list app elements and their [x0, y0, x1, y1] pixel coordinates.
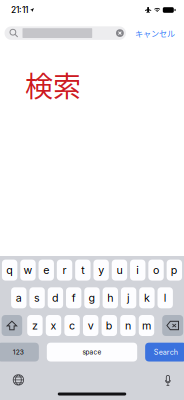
button[interactable]: t: [75, 260, 90, 281]
staticText: b: [106, 319, 113, 332]
button[interactable]: r: [57, 260, 72, 281]
button[interactable]: Delete: [162, 315, 183, 336]
button[interactable]: m: [139, 315, 154, 336]
button[interactable]: キャンセル: [134, 26, 176, 40]
button[interactable]: 123: [0, 343, 39, 361]
button[interactable]: space: [47, 343, 137, 361]
button[interactable]: a: [11, 287, 26, 308]
button[interactable]: l: [157, 287, 173, 308]
staticText: a: [16, 291, 22, 304]
button[interactable]: s: [29, 287, 45, 308]
staticText: v: [88, 319, 94, 332]
staticText: w: [23, 264, 32, 276]
staticText: キャンセル: [135, 27, 175, 39]
button[interactable]: y: [93, 260, 109, 281]
staticText: j: [127, 291, 130, 304]
button[interactable]: g: [84, 287, 100, 308]
staticText: q: [6, 264, 13, 276]
button[interactable]: x: [46, 315, 61, 336]
button[interactable]: w: [20, 260, 36, 281]
button[interactable]: p: [167, 260, 182, 281]
staticText: f: [72, 291, 76, 304]
button[interactable]: e: [38, 260, 54, 281]
staticText: h: [107, 291, 113, 304]
staticText: c: [69, 319, 75, 332]
staticText: y: [98, 264, 104, 276]
staticText: 123: [13, 348, 24, 356]
button[interactable]: o: [148, 260, 164, 281]
staticText: i: [136, 264, 139, 276]
staticText: d: [52, 291, 59, 304]
staticText: 21:11: [11, 5, 28, 15]
staticText: x: [50, 319, 56, 332]
button[interactable]: b: [102, 315, 117, 336]
staticText: s: [34, 291, 40, 304]
staticText: p: [171, 264, 178, 276]
staticText: 検索: [25, 64, 81, 105]
button[interactable]: z: [27, 315, 43, 336]
staticText: n: [125, 319, 131, 332]
staticText: t: [81, 264, 84, 276]
staticText: Search: [154, 348, 178, 356]
button[interactable]: d: [48, 287, 63, 308]
button[interactable]: c: [64, 315, 80, 336]
button[interactable]: u: [112, 260, 127, 281]
button[interactable]: f: [66, 287, 81, 308]
button[interactable]: q: [2, 260, 17, 281]
staticText: space: [82, 348, 101, 356]
staticText: e: [43, 264, 49, 276]
button[interactable]: n: [120, 315, 136, 336]
staticText: r: [62, 264, 66, 276]
staticText: u: [116, 264, 122, 276]
button[interactable]: Change keyboard: [13, 374, 24, 386]
staticText: k: [144, 291, 150, 304]
button[interactable]: h: [103, 287, 118, 308]
button[interactable]: k: [139, 287, 155, 308]
staticText: g: [88, 291, 95, 304]
staticText: l: [164, 291, 167, 304]
button[interactable]: Search: [145, 343, 184, 361]
staticText: m: [142, 319, 151, 332]
button[interactable]: Shift: [2, 315, 22, 336]
button[interactable]: i: [130, 260, 145, 281]
staticText: z: [32, 319, 38, 332]
button[interactable]: v: [83, 315, 98, 336]
button[interactable]: Dictation: [165, 374, 171, 386]
staticText: o: [153, 264, 159, 276]
button[interactable]: j: [121, 287, 136, 308]
